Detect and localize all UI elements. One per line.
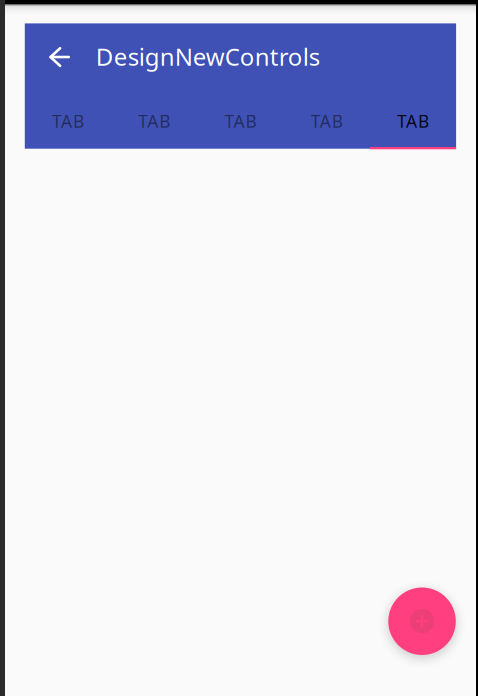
staticText: DesignNewControls [96, 41, 320, 72]
staticText: TAB [311, 109, 343, 132]
staticText: TAB [138, 109, 170, 132]
staticText: TAB [224, 109, 256, 132]
staticText: TAB [52, 109, 84, 132]
button[interactable]: TAB [111, 93, 197, 148]
button[interactable]: TAB [197, 93, 284, 148]
button[interactable]: TAB [284, 93, 370, 148]
button[interactable]: Back [35, 34, 83, 82]
button[interactable]: TAB [25, 93, 111, 148]
button[interactable]: TAB [370, 93, 456, 148]
button[interactable]: Add [388, 587, 456, 655]
staticText: TAB [397, 109, 429, 132]
